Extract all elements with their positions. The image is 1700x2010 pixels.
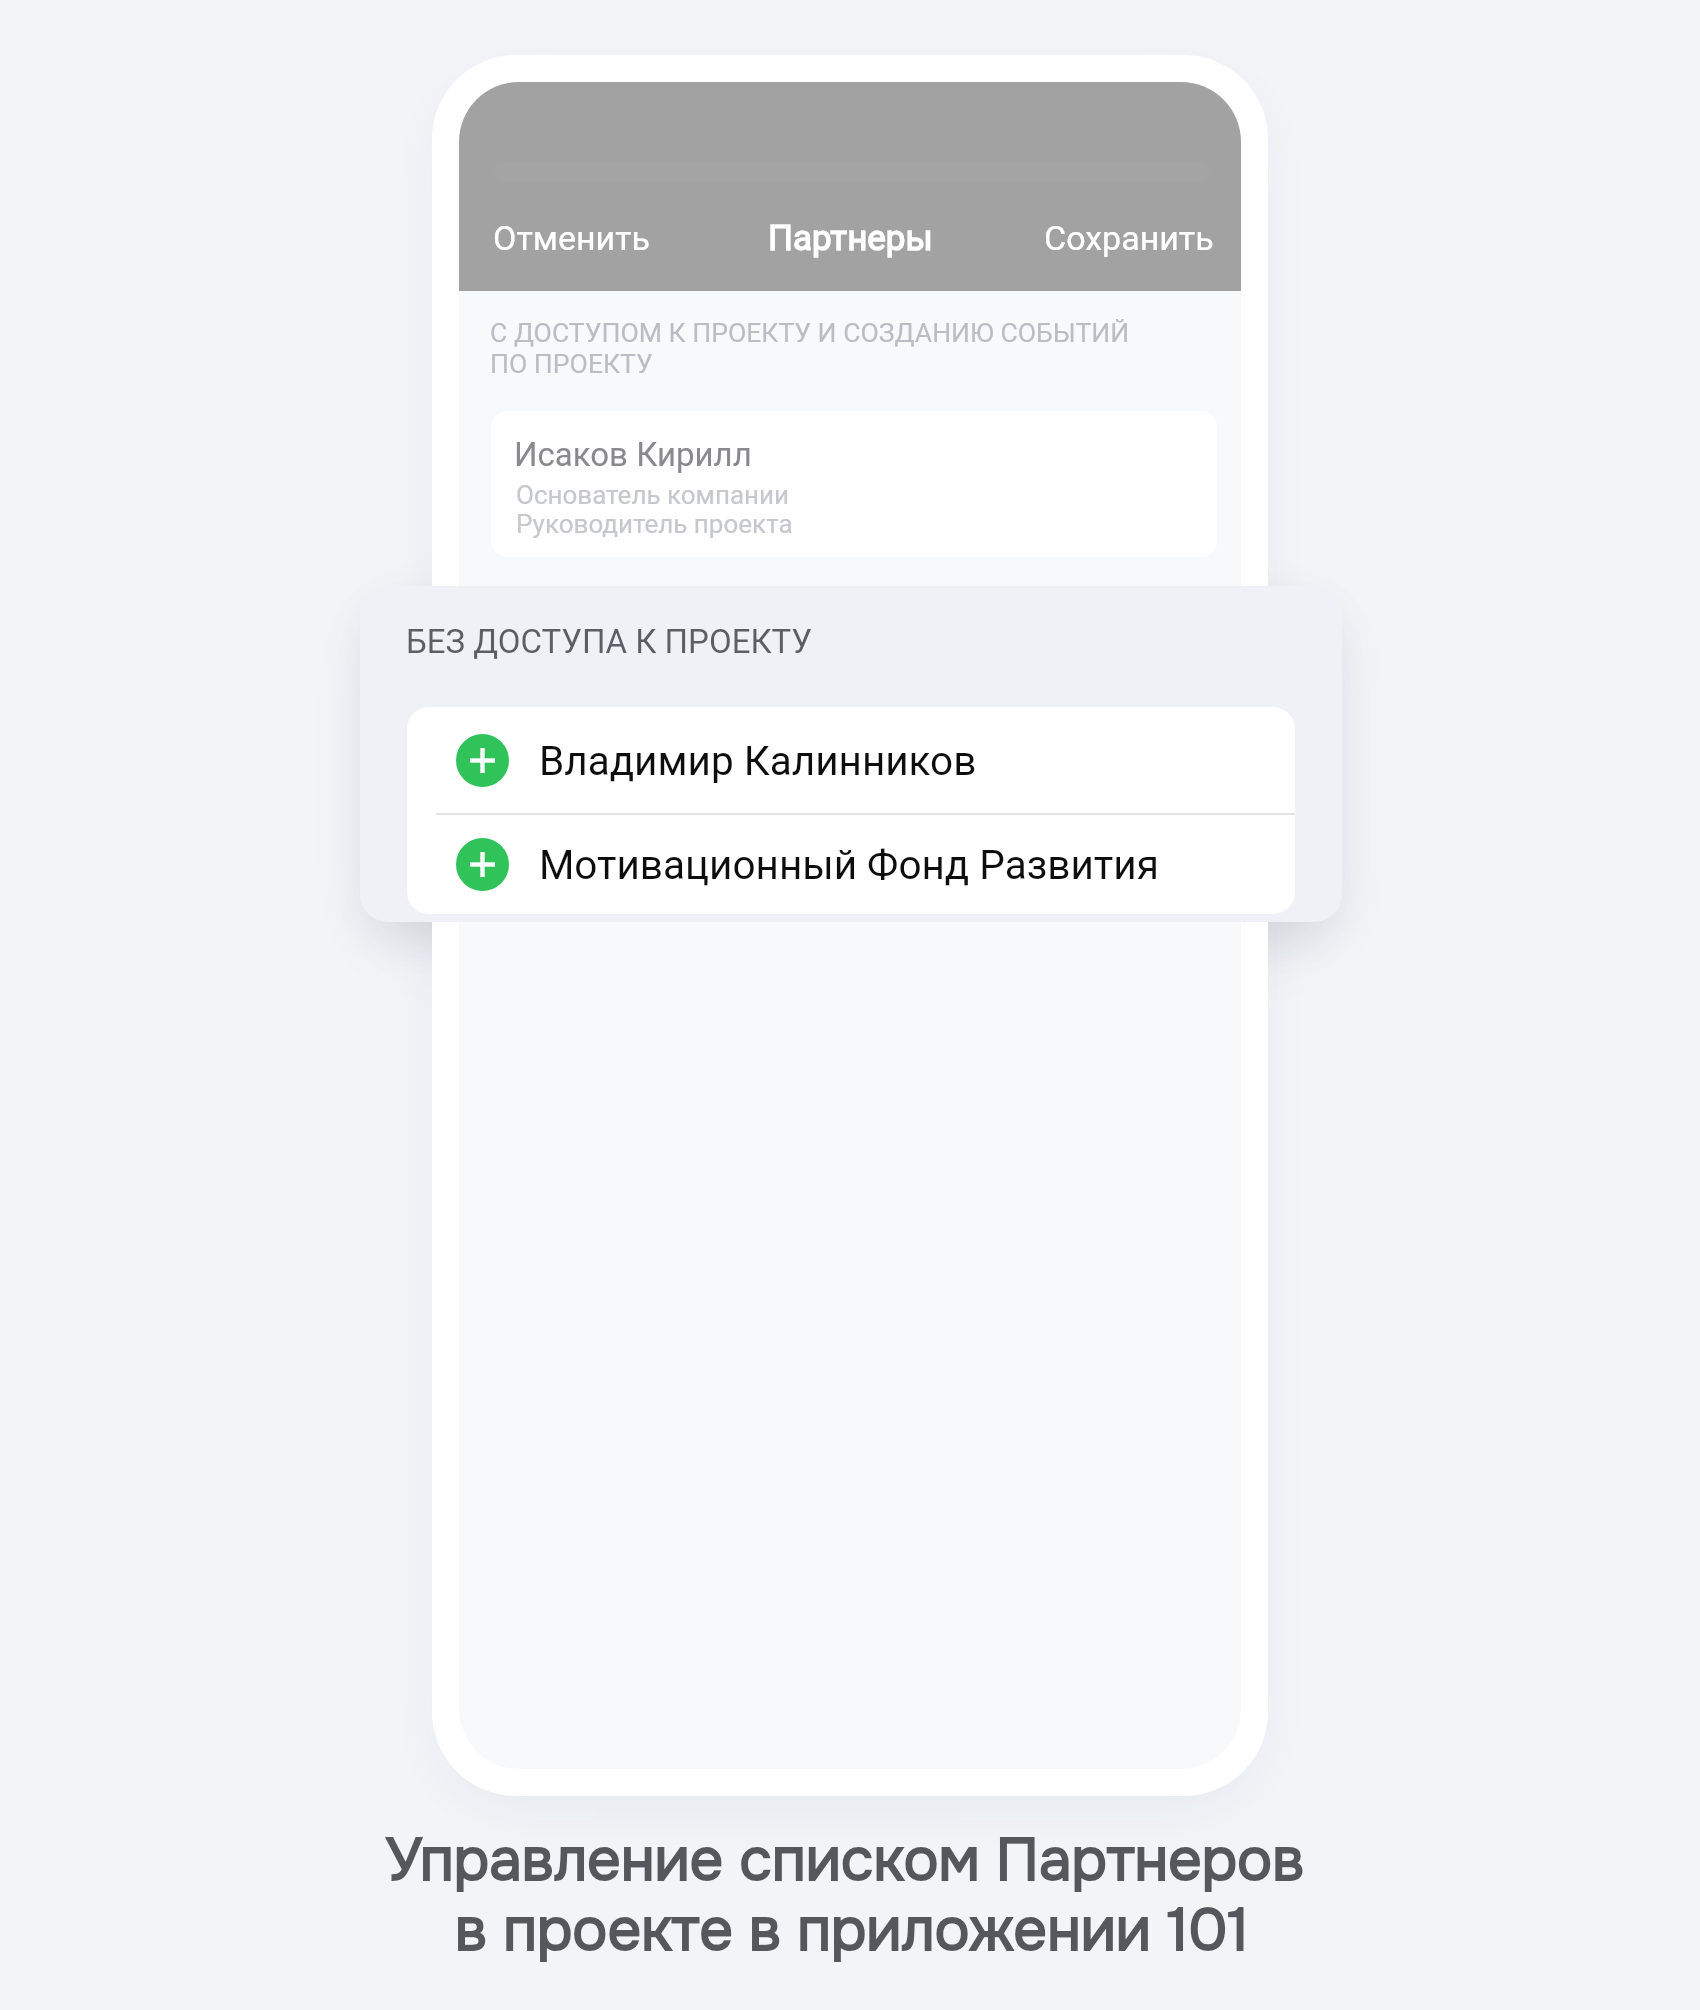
button[interactable]: Партнеры [756,210,945,267]
button[interactable]: Исаков Кирилл [491,411,1217,557]
staticText: Управление списком Партнеров [0,1823,1695,1898]
staticText: С ДОСТУПОМ К ПРОЕКТУ И СОЗДАНИЮ СОБЫТИЙ … [490,317,1130,379]
staticText: Исаков Кирилл [514,435,752,474]
staticText: в проекте в приложении 101 [2,1893,1700,1968]
button[interactable]: Отменить [481,210,663,266]
button[interactable]: Добавить: Мотивационный Фонд Развития [407,815,1295,914]
staticText: Владимир Калинников [539,737,977,784]
other: Добавить: Мотивационный Фонд Развития [456,838,509,891]
other: Добавить: Владимир Калинников [456,734,509,787]
staticText: Сохранить [1044,218,1214,258]
staticText: Отменить [493,218,651,258]
staticText: БЕЗ ДОСТУПА К ПРОЕКТУ [406,622,813,661]
button[interactable]: Сохранить [1032,210,1226,266]
button[interactable]: Добавить: Владимир Калинников [407,707,1295,813]
staticText: Основатель компании Руководитель проекта [516,480,793,539]
staticText: Партнеры [768,218,933,259]
staticText: Мотивационный Фонд Развития [539,841,1159,888]
